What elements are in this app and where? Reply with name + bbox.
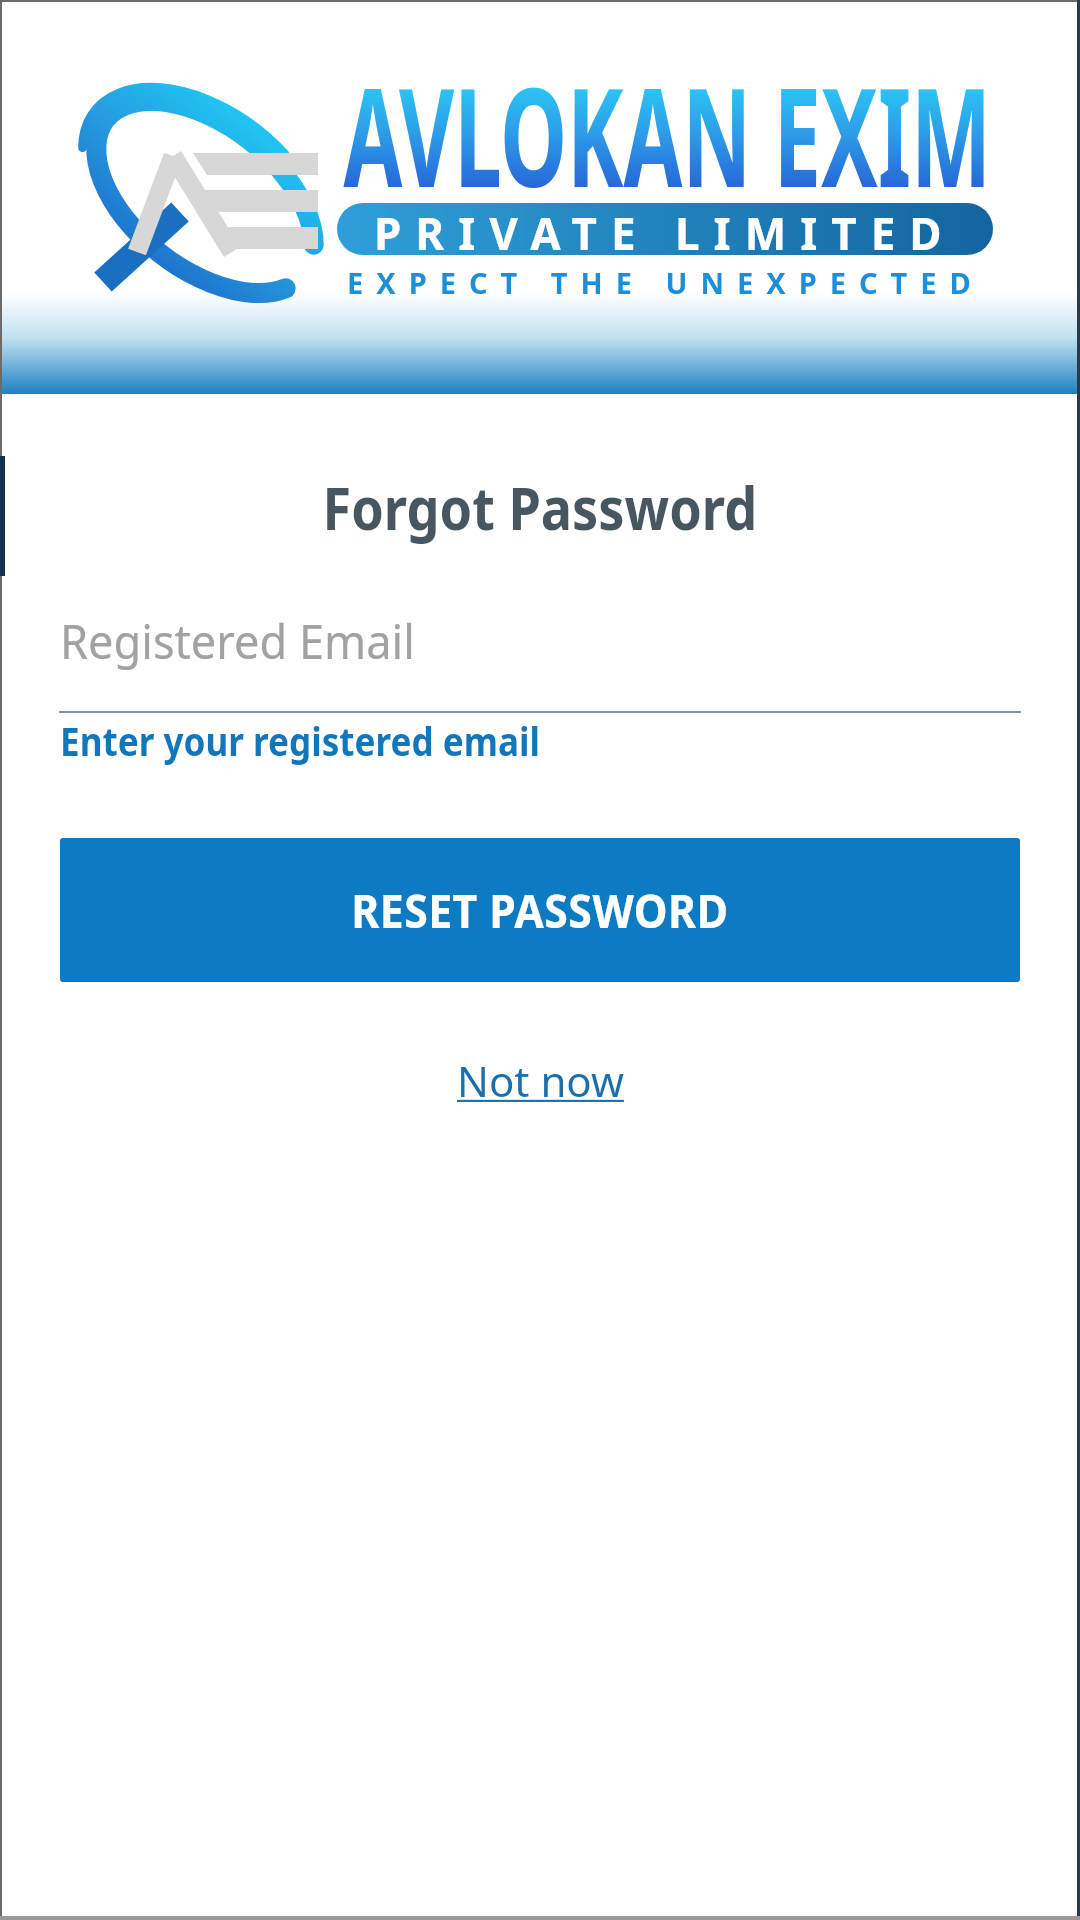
- staticText: Enter your registered email: [60, 714, 541, 767]
- staticText: AVLOKAN EXIM: [343, 41, 991, 228]
- staticText: Forgot Password: [322, 466, 757, 548]
- staticText: RESET PASSWORD: [351, 879, 729, 942]
- staticText: PRIVATE LIMITED: [374, 203, 956, 255]
- button[interactable]: Not now: [457, 1052, 624, 1109]
- button[interactable]: RESET PASSWORD: [60, 838, 1020, 982]
- staticText: Registered Email: [60, 608, 415, 673]
- staticText: EXPECT THE UNEXPECTED: [347, 263, 984, 302]
